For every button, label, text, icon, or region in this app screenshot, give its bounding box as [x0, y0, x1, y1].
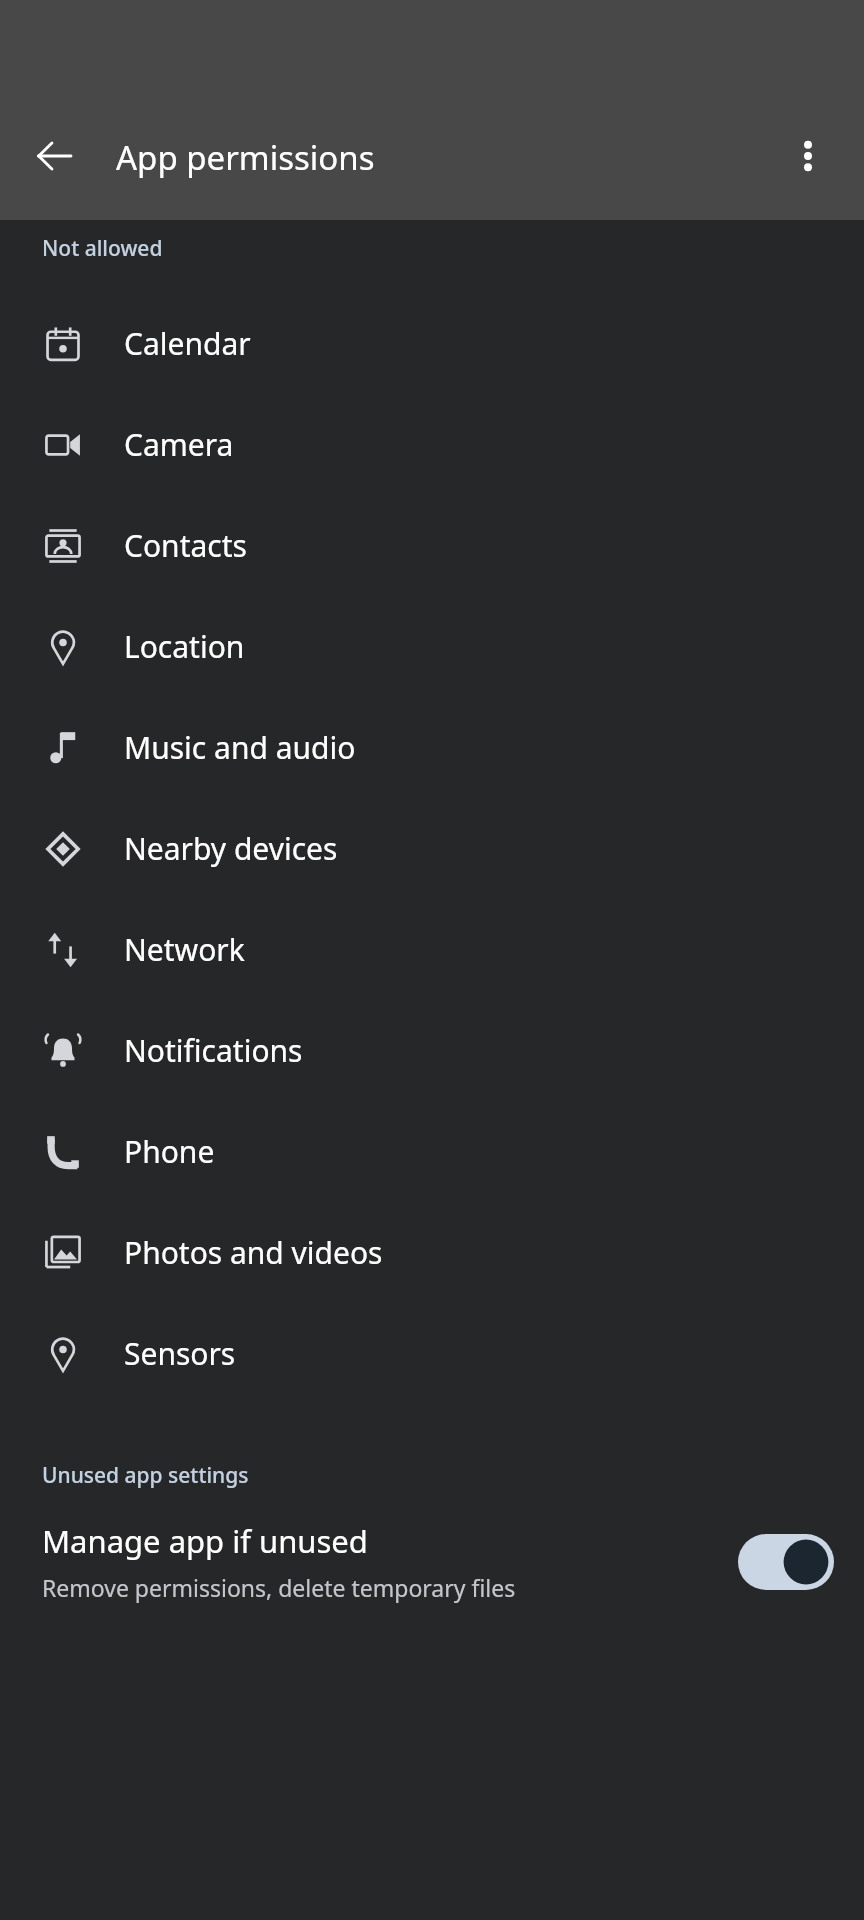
staticText: Phone	[124, 1131, 215, 1172]
button[interactable]: Contacts	[0, 495, 864, 596]
staticText: Contacts	[124, 525, 247, 566]
staticText: Not allowed	[42, 234, 163, 263]
staticText: Remove permissions, delete temporary fil…	[42, 1572, 516, 1603]
button[interactable]: Sensors	[0, 1303, 864, 1404]
staticText: Notifications	[124, 1030, 303, 1071]
staticText: Manage app if unused	[42, 1520, 368, 1562]
staticText: Location	[124, 626, 245, 667]
button[interactable]: Camera	[0, 394, 864, 495]
button[interactable]: Manage app if unused	[0, 1520, 864, 1603]
staticText: Music and audio	[124, 727, 356, 768]
button[interactable]: Nearby devices	[0, 798, 864, 899]
button[interactable]: Photos and videos	[0, 1202, 864, 1303]
button[interactable]: Music and audio	[0, 697, 864, 798]
button[interactable]: Calendar	[0, 293, 864, 394]
staticText: Sensors	[124, 1333, 236, 1374]
staticText: Network	[124, 929, 245, 970]
button[interactable]: Notifications	[0, 1000, 864, 1101]
staticText: Camera	[124, 424, 234, 465]
staticText: Calendar	[124, 323, 251, 364]
staticText: Nearby devices	[124, 828, 338, 869]
button[interactable]: Manage app if unused	[738, 1534, 834, 1590]
staticText: Photos and videos	[124, 1232, 383, 1273]
staticText: App permissions	[116, 135, 375, 180]
button[interactable]: Network	[0, 899, 864, 1000]
staticText: Unused app settings	[42, 1461, 249, 1490]
button[interactable]: Back	[20, 122, 88, 190]
button[interactable]: Location	[0, 596, 864, 697]
button[interactable]: Phone	[0, 1101, 864, 1202]
button[interactable]: More options	[774, 122, 842, 190]
